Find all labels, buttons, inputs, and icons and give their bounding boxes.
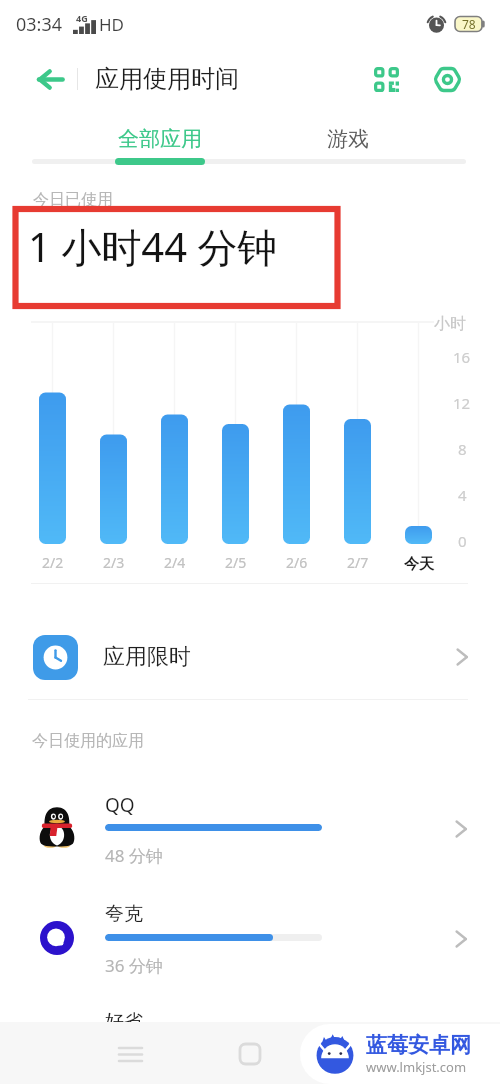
staticText: 4 <box>458 485 467 505</box>
button[interactable]: Back <box>24 53 76 105</box>
button[interactable]: 游戏 <box>268 117 428 161</box>
button[interactable]: 应用限时 <box>0 615 500 699</box>
button[interactable]: Scan QR code <box>363 56 409 102</box>
button[interactable]: Recent apps <box>110 1034 150 1074</box>
staticText: HD <box>99 13 125 36</box>
staticText: 03:34 <box>16 12 63 37</box>
staticText: 2/4 <box>164 553 186 572</box>
staticText: 应用限时 <box>103 643 191 671</box>
button[interactable]: 夸克 <box>0 900 500 1000</box>
staticText: 夸克 <box>105 902 143 926</box>
staticText: 今日使用的应用 <box>32 731 144 751</box>
button[interactable]: QQ <box>0 790 500 890</box>
staticText: 36 分钟 <box>105 954 163 977</box>
staticText: 0 <box>458 531 467 551</box>
button[interactable]: Settings <box>424 56 470 102</box>
staticText: 2/7 <box>347 553 369 572</box>
staticText: 2/5 <box>225 553 247 572</box>
staticText: 78 <box>462 16 476 32</box>
staticText: 4G <box>76 12 88 24</box>
staticText: 应用使用时间 <box>95 64 239 94</box>
staticText: 16 <box>453 347 471 367</box>
staticText: 2/6 <box>286 553 308 572</box>
staticText: 12 <box>453 393 471 413</box>
staticText: 8 <box>458 439 467 459</box>
staticText: 小时 <box>434 314 466 334</box>
staticText: 48 分钟 <box>105 844 163 867</box>
staticText: 今天 <box>404 555 434 574</box>
button[interactable]: 全部应用 <box>80 117 240 161</box>
staticText: 2/3 <box>103 553 125 572</box>
staticText: 今日已使用 <box>33 190 113 210</box>
staticText: QQ <box>105 792 135 818</box>
staticText: 蓝莓安卓网 <box>366 1032 471 1058</box>
staticText: 2/2 <box>42 553 64 572</box>
staticText: 好省 <box>105 1010 143 1034</box>
button[interactable]: Home <box>230 1034 270 1074</box>
staticText: 游戏 <box>327 126 369 152</box>
staticText: 全部应用 <box>118 126 202 152</box>
staticText: 1 小时44 分钟 <box>28 219 278 274</box>
staticText: www.lmkjst.com <box>366 1058 467 1076</box>
